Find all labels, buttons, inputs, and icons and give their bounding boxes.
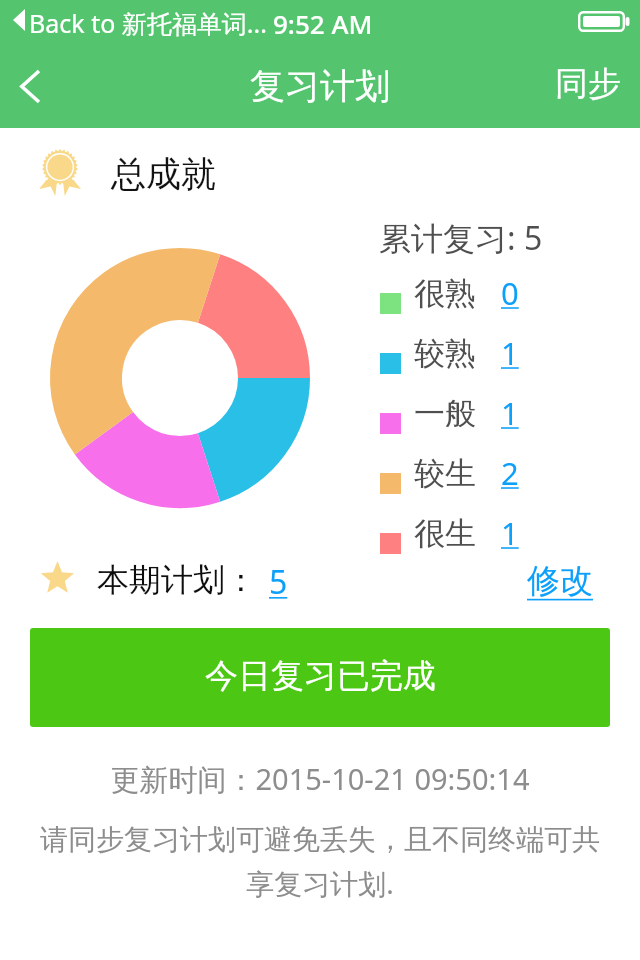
button[interactable]: 同步 <box>547 55 629 113</box>
staticText: 5 <box>269 560 288 604</box>
staticText: 2 <box>501 452 519 494</box>
staticText: 同步 <box>555 63 621 105</box>
staticText: 9:52 AM <box>273 6 373 41</box>
staticText: 很生 <box>414 514 476 553</box>
staticText: 累计复习: 5 <box>379 216 543 260</box>
staticText: 很熟 <box>414 274 476 313</box>
button[interactable]: 一般 <box>380 402 519 444</box>
staticText: 今日复习已完成 <box>205 655 436 697</box>
staticText: Back to 新托福单词... <box>29 6 267 40</box>
staticText: 1 <box>501 332 519 374</box>
staticText: 一般 <box>414 394 476 433</box>
button[interactable]: 今日复习已完成 <box>30 628 610 727</box>
staticText: 复习计划 <box>250 64 390 108</box>
button[interactable]: 本期计划： <box>97 558 288 602</box>
staticText: 更新时间：2015-10-21 09:50:14 <box>0 759 640 799</box>
staticText: 请同步复习计划可避免丢失，且不同终端可共享复习计划. <box>30 822 610 902</box>
staticText: 总成就 <box>111 152 216 196</box>
button[interactable]: 较熟 <box>380 342 519 384</box>
button[interactable]: 修改 <box>527 560 593 602</box>
button[interactable]: Back <box>0 46 62 126</box>
staticText: 1 <box>501 512 519 554</box>
staticText: 较熟 <box>414 334 476 373</box>
staticText: 0 <box>501 272 519 314</box>
button[interactable]: 很生 <box>380 522 519 564</box>
button[interactable]: 很熟 <box>380 282 519 324</box>
staticText: 较生 <box>414 454 476 493</box>
staticText: 1 <box>501 392 519 434</box>
staticText: 本期计划： <box>97 560 257 600</box>
button[interactable]: 较生 <box>380 462 519 504</box>
staticText: 修改 <box>527 560 593 602</box>
